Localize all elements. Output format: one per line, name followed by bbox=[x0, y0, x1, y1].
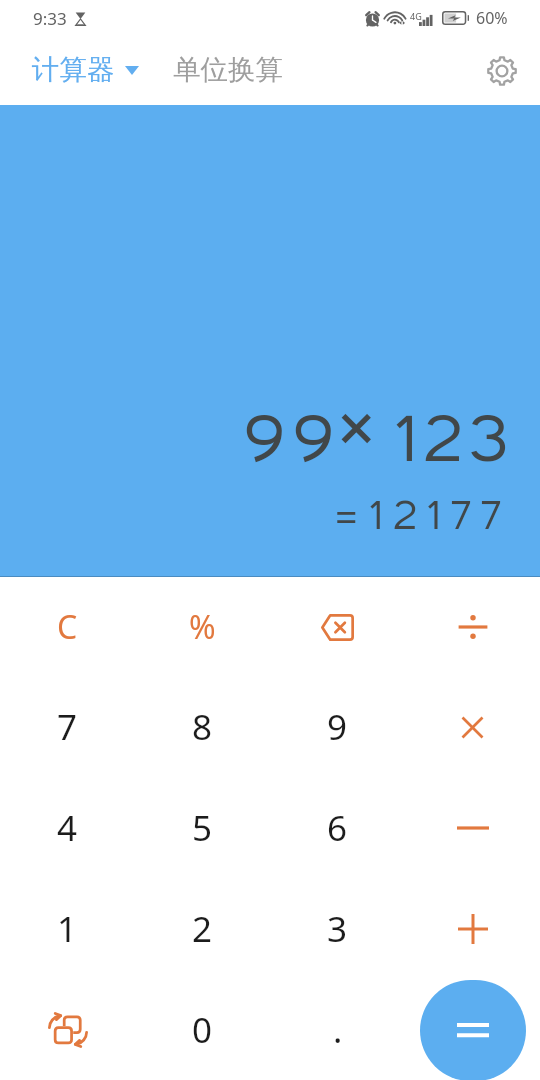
button[interactable]: 9 bbox=[270, 677, 405, 777]
button[interactable]: 单位换算 bbox=[169, 45, 287, 96]
button[interactable]: 6 bbox=[270, 777, 405, 878]
staticText: 4 bbox=[57, 804, 78, 852]
button[interactable]: 7 bbox=[0, 677, 135, 777]
button[interactable]: 8 bbox=[135, 677, 270, 777]
button[interactable]: Plus bbox=[405, 878, 540, 979]
staticText: 4G bbox=[410, 10, 422, 22]
staticText: % bbox=[189, 605, 216, 649]
staticText: × bbox=[330, 361, 383, 470]
button[interactable]: Minus bbox=[405, 777, 540, 878]
staticText: 计算器 bbox=[32, 53, 115, 88]
button[interactable]: . bbox=[270, 979, 405, 1080]
staticText: 0 bbox=[192, 1006, 213, 1054]
button[interactable]: 4 bbox=[0, 777, 135, 878]
button[interactable]: 5 bbox=[135, 777, 270, 878]
button[interactable]: 2 bbox=[135, 878, 270, 979]
button[interactable]: Settings bbox=[480, 49, 524, 93]
staticText: 2 bbox=[192, 905, 213, 953]
staticText: =12177 bbox=[333, 485, 512, 540]
staticText: 123 bbox=[395, 389, 515, 479]
button[interactable]: Unit conversion bbox=[0, 979, 135, 1080]
staticText: 9 bbox=[327, 703, 348, 751]
button[interactable]: Divide bbox=[405, 577, 540, 677]
staticText: . bbox=[333, 1006, 343, 1054]
staticText: 99 bbox=[244, 389, 343, 479]
staticText: 60% bbox=[476, 7, 508, 29]
button[interactable]: 计算器 bbox=[0, 45, 147, 96]
staticText: 1 bbox=[57, 905, 78, 953]
button[interactable]: Backspace bbox=[270, 577, 405, 677]
button[interactable]: Equals bbox=[405, 979, 540, 1080]
button[interactable]: Multiply bbox=[405, 677, 540, 777]
staticText: 8 bbox=[192, 703, 213, 751]
button[interactable]: C bbox=[0, 577, 135, 677]
staticText: 3 bbox=[327, 905, 348, 953]
staticText: 单位换算 bbox=[173, 53, 283, 88]
button[interactable]: 1 bbox=[0, 878, 135, 979]
staticText: 7 bbox=[57, 703, 78, 751]
button[interactable]: % bbox=[135, 577, 270, 677]
button[interactable]: 3 bbox=[270, 878, 405, 979]
staticText: 9:33 bbox=[33, 7, 67, 30]
button[interactable]: 0 bbox=[135, 979, 270, 1080]
staticText: 5 bbox=[192, 804, 213, 852]
staticText: C bbox=[57, 605, 78, 649]
staticText: 6 bbox=[327, 804, 348, 852]
